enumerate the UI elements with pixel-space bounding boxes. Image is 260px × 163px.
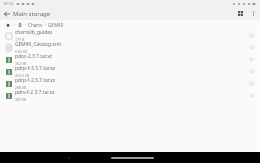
staticText: 10:12 (3, 1, 14, 6)
staticText: GEM40_Catalog.xml (15, 41, 61, 48)
staticText: GEM40 (48, 22, 64, 28)
button[interactable]: pdrv-f-2.3.7.tar.xz (0, 89, 260, 101)
button[interactable]: Charts (28, 22, 43, 28)
button[interactable]: pdrp-f-2.3.7.tar.xz (0, 77, 260, 89)
staticText: Main storage (13, 10, 51, 18)
button[interactable]: Internal storage (16, 21, 23, 28)
button[interactable]: Select item (247, 67, 256, 76)
button[interactable]: Back (0, 7, 13, 20)
button[interactable]: Grid view (234, 7, 247, 20)
staticText: chartslib_guides (15, 29, 53, 36)
staticText: 453.6 KB (15, 73, 30, 77)
staticText: 309 KB (15, 97, 27, 101)
button[interactable]: Back (66, 155, 72, 161)
staticText: 302 KB (15, 61, 27, 65)
button[interactable]: pdoc-2.3.7.tar.xz (0, 53, 260, 65)
staticText: pdrv-f-2.3.7.tar.xz (15, 89, 55, 96)
staticText: pdoc-2.3.7.tar.xz (15, 53, 53, 60)
staticText: pdrp-f-3.3.7.tar.xz (15, 65, 56, 72)
button[interactable]: GEM40_Catalog.xml (0, 41, 260, 53)
button[interactable]: Home (111, 157, 154, 159)
button[interactable]: GEM40 (48, 22, 64, 28)
staticText: pdrp-f-2.3.7.tar.xz (15, 77, 56, 84)
button[interactable]: More options (247, 91, 256, 100)
button[interactable]: chartslib_guides (0, 29, 260, 41)
staticText: 288 KB (15, 85, 27, 89)
button[interactable]: pdrp-f-3.3.7.tar.xz (0, 65, 260, 77)
button[interactable]: Home (4, 21, 11, 28)
button[interactable]: More options (247, 7, 260, 20)
staticText: 6.60 KB (15, 49, 28, 53)
button[interactable]: Select item (247, 31, 256, 40)
button[interactable]: More options (247, 55, 256, 64)
button[interactable]: Select item (247, 43, 256, 52)
button[interactable]: Select item (247, 79, 256, 88)
staticText: 179 B (15, 37, 25, 41)
staticText: Charts (28, 22, 43, 28)
